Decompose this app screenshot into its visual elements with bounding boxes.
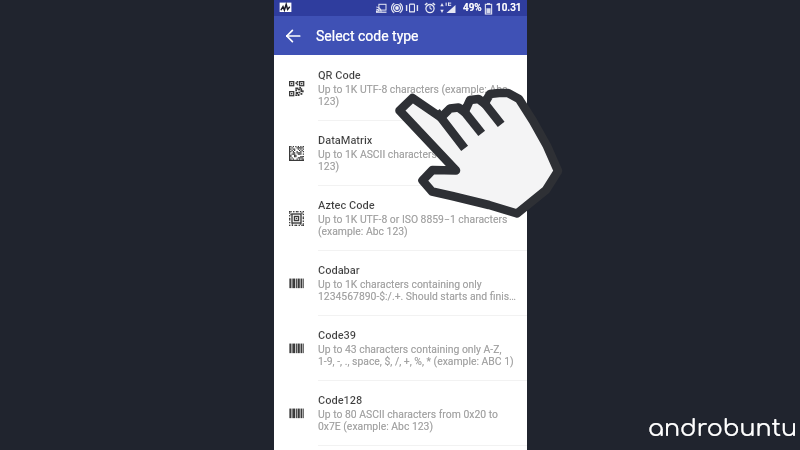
button[interactable]: Code128 (274, 381, 527, 446)
staticText: Up to 1K UTF-8 characters (example: Abc … (318, 83, 520, 108)
staticText: Up to 1K characters containing only 1234… (318, 278, 520, 303)
button[interactable]: Codabar (274, 251, 527, 316)
staticText: androbuntu (648, 415, 798, 441)
staticText: Up to 80 ASCII characters from 0x20 to 0… (318, 408, 520, 433)
button[interactable]: DataMatrix (274, 121, 527, 186)
staticText: Up to 43 characters containing only A-Z,… (318, 343, 520, 368)
button[interactable]: Aztec Code (274, 186, 527, 251)
staticText: DataMatrix (318, 134, 373, 147)
staticText: Up to 1K ASCII characters (example: Abc … (318, 148, 520, 173)
button[interactable]: QR Code (274, 56, 527, 121)
button[interactable]: Code39 (274, 316, 527, 381)
staticText: Up to 1K UTF-8 or ISO 8859−1 characters … (318, 213, 520, 238)
staticText: Code39 (318, 329, 357, 342)
staticText: Codabar (318, 264, 360, 277)
staticText: Select code type (316, 28, 419, 44)
staticText: 49% (463, 2, 482, 14)
button[interactable]: Back (280, 23, 306, 49)
staticText: 10.31 (496, 2, 522, 14)
staticText: QR Code (318, 69, 361, 82)
staticText: Aztec Code (318, 199, 375, 212)
staticText: Code128 (318, 394, 363, 407)
